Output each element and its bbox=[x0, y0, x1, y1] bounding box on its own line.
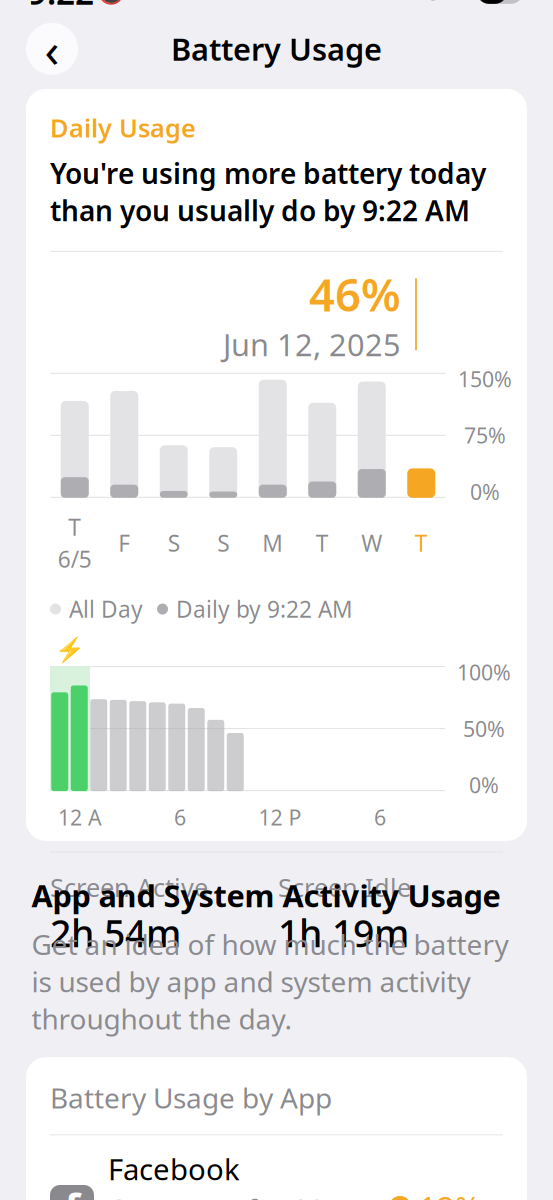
staticText: 6 bbox=[174, 803, 186, 831]
staticText: Jun 12, 2025 bbox=[223, 324, 401, 365]
staticText: 0% bbox=[470, 477, 500, 506]
staticText: 🔕 bbox=[97, 0, 125, 5]
staticText: App and System Activity Usage bbox=[31, 875, 500, 916]
staticText: T bbox=[316, 528, 329, 558]
staticText: 12 A bbox=[58, 803, 102, 831]
staticText: 100% bbox=[457, 658, 511, 686]
staticText: 12% bbox=[419, 1187, 480, 1200]
staticText: 12 P bbox=[258, 803, 301, 831]
staticText: You're using more battery today than you… bbox=[50, 154, 486, 229]
staticText: 9:22 bbox=[28, 0, 94, 14]
staticText: 0% bbox=[469, 771, 499, 799]
staticText: 2h 54m bbox=[50, 908, 181, 958]
staticText: Daily Usage bbox=[50, 111, 196, 144]
staticText: 150% bbox=[458, 365, 512, 393]
staticText: Facebook bbox=[108, 1149, 240, 1188]
button[interactable]: f bbox=[26, 1135, 527, 1200]
staticText: 38 bbox=[489, 0, 511, 5]
staticText: S bbox=[217, 528, 229, 558]
staticText: 6/5 bbox=[58, 544, 92, 574]
staticText: 46% bbox=[309, 264, 401, 324]
staticText: ‹ bbox=[44, 17, 59, 81]
staticText: ! bbox=[397, 1194, 403, 1200]
staticText: Screen Idle bbox=[278, 870, 411, 904]
staticText: Get an idea of how much the battery is u… bbox=[31, 926, 508, 1037]
staticText: ⚡ bbox=[55, 636, 85, 664]
staticText: Screen Active bbox=[50, 870, 208, 904]
staticText: S bbox=[168, 528, 180, 558]
staticText: Battery Usage by App bbox=[50, 1079, 332, 1116]
staticText: 1h 19m bbox=[278, 908, 409, 958]
button[interactable]: Back bbox=[26, 23, 78, 75]
staticText: f bbox=[64, 1180, 79, 1200]
staticText: All Day bbox=[69, 594, 143, 624]
staticText: On screen for 39m longer bbox=[108, 1190, 351, 1200]
staticText: F bbox=[118, 528, 130, 558]
staticText: Battery Usage bbox=[171, 28, 382, 69]
staticText: Daily by 9:22 AM bbox=[176, 594, 353, 624]
staticText: 75% bbox=[464, 421, 506, 449]
staticText: T bbox=[68, 512, 81, 542]
staticText: 6 bbox=[374, 803, 386, 831]
staticText: W bbox=[361, 528, 382, 558]
staticText: 50% bbox=[463, 714, 505, 743]
staticText: T bbox=[415, 528, 428, 558]
staticText: M bbox=[262, 528, 283, 558]
